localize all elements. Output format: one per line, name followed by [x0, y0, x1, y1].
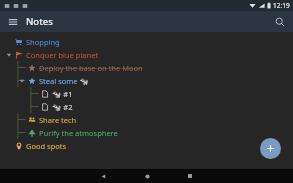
button[interactable]: Search [271, 13, 289, 31]
button[interactable]: 🐄 #2 [0, 100, 293, 113]
button[interactable]: 🐄 #1 [0, 87, 293, 100]
staticText: Good spots [26, 141, 67, 151]
staticText: Share tech [39, 115, 77, 125]
button[interactable]: Collapse Conquer blue planet [4, 48, 13, 61]
button[interactable]: Share tech [0, 113, 293, 126]
staticText: Conquer blue planet [26, 50, 99, 60]
button[interactable]: Recent apps [183, 169, 197, 183]
staticText: Shopping [26, 37, 60, 47]
staticText: 🐄 #2 [52, 102, 73, 112]
button[interactable]: Collapse Steal some 🐄 [0, 74, 293, 87]
button[interactable]: Deploy the base on the Moon [0, 61, 293, 74]
staticText: 12:19 [273, 1, 290, 10]
button[interactable]: Collapse Steal some 🐄 [17, 74, 26, 87]
button[interactable]: Purify the atmosphere [0, 126, 293, 139]
button[interactable]: Good spots [0, 139, 293, 152]
staticText: Steal some 🐄 [39, 76, 89, 86]
button[interactable]: Open navigation drawer [4, 13, 22, 31]
button[interactable]: Back [96, 169, 110, 183]
button[interactable]: Add note [260, 138, 281, 159]
staticText: 🐄 #1 [52, 89, 73, 99]
button[interactable]: Shopping [0, 35, 293, 48]
button[interactable]: Home [140, 169, 154, 183]
button[interactable]: Collapse Conquer blue planet [0, 48, 293, 61]
staticText: Deploy the base on the Moon [39, 63, 143, 73]
staticText: Notes [26, 15, 53, 28]
staticText: Purify the atmosphere [39, 128, 118, 138]
